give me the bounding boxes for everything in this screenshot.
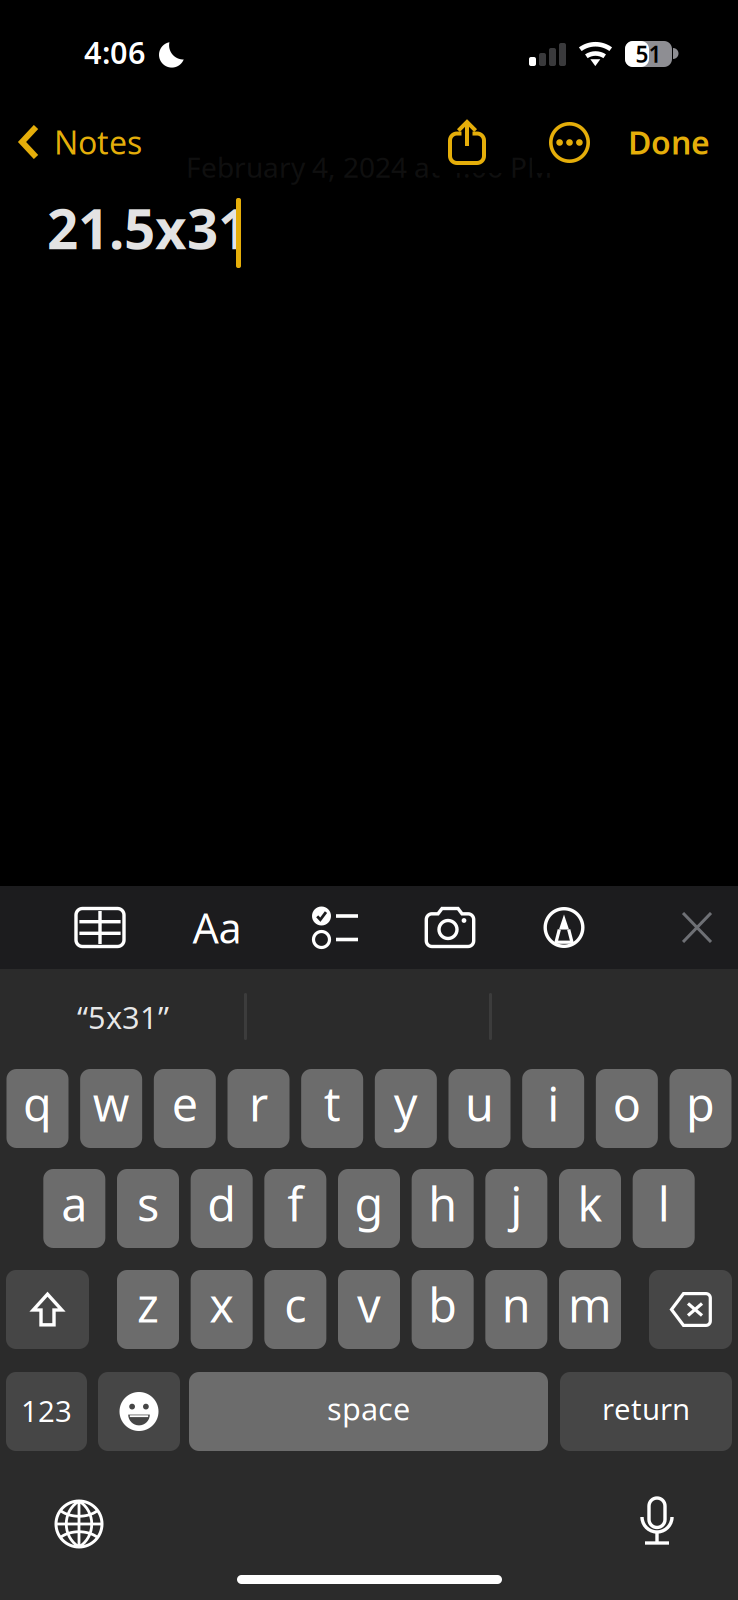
button[interactable]: Format [167, 886, 267, 969]
staticText: h [428, 1172, 457, 1234]
button[interactable]: Table [50, 886, 150, 969]
button[interactable]: s [117, 1169, 179, 1248]
staticText: g [354, 1172, 383, 1234]
button[interactable]: u [448, 1069, 510, 1148]
staticText: i [547, 1072, 559, 1134]
button[interactable]: e [154, 1069, 216, 1148]
button[interactable]: b [412, 1270, 474, 1349]
button[interactable]: j [485, 1169, 547, 1248]
staticText: Aa [192, 900, 241, 955]
button[interactable]: l [633, 1169, 695, 1248]
staticText: o [613, 1072, 641, 1134]
button[interactable]: r [227, 1069, 289, 1148]
staticText: a [61, 1172, 87, 1234]
button[interactable]: Shift [6, 1270, 89, 1349]
staticText: c [284, 1273, 306, 1335]
staticText: “5x31” [77, 997, 169, 1037]
staticText: q [23, 1072, 52, 1134]
staticText: 123 [21, 1391, 72, 1430]
staticText: n [502, 1273, 531, 1335]
staticText: y [394, 1072, 418, 1134]
staticText: Notes [54, 121, 142, 163]
staticText: d [207, 1172, 236, 1234]
button[interactable]: a [43, 1169, 105, 1248]
staticText: k [577, 1172, 602, 1234]
button[interactable]: Checklist [285, 886, 385, 969]
staticText: f [287, 1172, 303, 1234]
button[interactable]: x [191, 1270, 253, 1349]
button[interactable]: h [412, 1169, 474, 1248]
button[interactable]: n [485, 1270, 547, 1349]
staticText: l [658, 1172, 670, 1234]
staticText: r [249, 1072, 268, 1134]
staticText: x [209, 1273, 234, 1335]
button[interactable]: Share [430, 111, 504, 173]
button[interactable]: k [559, 1169, 621, 1248]
staticText: e [172, 1072, 198, 1134]
staticText: return [602, 1389, 690, 1428]
button[interactable]: w [80, 1069, 142, 1148]
button[interactable]: p [669, 1069, 731, 1148]
staticText: s [137, 1172, 159, 1234]
staticText: space [327, 1388, 410, 1429]
button[interactable]: Next keyboard [36, 1488, 122, 1560]
staticText: February 4, 2024 at 4:06 PM [186, 148, 552, 186]
button[interactable]: Delete [649, 1270, 732, 1349]
staticText: m [568, 1273, 612, 1335]
button[interactable]: More [532, 111, 606, 173]
staticText: 51 [635, 39, 661, 69]
staticText: j [510, 1172, 522, 1234]
staticText: u [465, 1072, 494, 1134]
staticText: 21.5x31 [47, 192, 249, 264]
staticText: Done [628, 121, 710, 163]
staticText: w [93, 1072, 130, 1134]
button[interactable]: g [338, 1169, 400, 1248]
button[interactable]: t [301, 1069, 363, 1148]
button[interactable]: m [559, 1270, 621, 1349]
button[interactable]: Emoji [98, 1372, 180, 1451]
button[interactable]: Dictation [614, 1486, 700, 1558]
staticText: b [428, 1273, 457, 1335]
button[interactable]: c [264, 1270, 326, 1349]
button[interactable]: z [117, 1270, 179, 1349]
button[interactable]: d [191, 1169, 253, 1248]
button[interactable]: Markup [514, 886, 614, 969]
staticText: 4:06 [84, 32, 146, 72]
staticText: z [137, 1273, 159, 1335]
button[interactable]: Camera [400, 886, 500, 969]
button[interactable]: Done [615, 111, 723, 173]
button[interactable]: 123 [6, 1372, 87, 1451]
button[interactable]: o [596, 1069, 658, 1148]
staticText: v [357, 1273, 381, 1335]
button[interactable]: Notes [0, 111, 190, 173]
button[interactable]: v [338, 1270, 400, 1349]
staticText: t [324, 1072, 341, 1134]
button[interactable]: Close [652, 886, 738, 969]
button[interactable]: y [375, 1069, 437, 1148]
button[interactable]: i [522, 1069, 584, 1148]
button[interactable]: return [560, 1372, 732, 1451]
staticText: p [686, 1072, 715, 1134]
button[interactable]: space [189, 1372, 548, 1451]
button[interactable]: f [264, 1169, 326, 1248]
button[interactable]: q [6, 1069, 68, 1148]
